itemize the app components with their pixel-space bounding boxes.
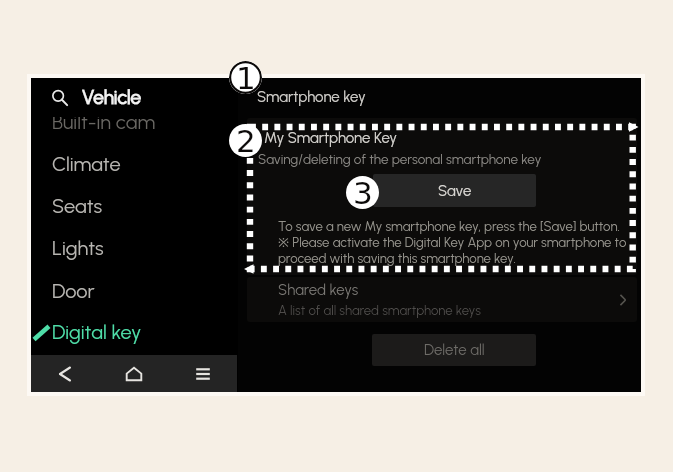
button[interactable]: Lights xyxy=(31,228,238,268)
staticText: To save a new My smartphone key, press t… xyxy=(278,218,627,266)
button[interactable] xyxy=(247,277,637,322)
button[interactable]: Save xyxy=(373,174,536,207)
staticText: Digital key xyxy=(52,320,142,344)
staticText: My Smartphone Key xyxy=(264,129,398,147)
staticText: Vehicle xyxy=(82,86,142,109)
button[interactable]: Seats xyxy=(31,186,238,226)
button[interactable]: Back xyxy=(31,355,99,392)
staticText: Delete all xyxy=(424,341,485,359)
button[interactable]: Built-in cam xyxy=(31,102,238,142)
staticText: Climate xyxy=(52,152,121,176)
staticText: 3 xyxy=(353,176,373,208)
button[interactable]: Vehicle xyxy=(51,82,142,112)
staticText: Seats xyxy=(52,194,103,218)
staticText: Smartphone key xyxy=(257,88,366,106)
button[interactable]: Climate xyxy=(31,144,238,184)
staticText: Save xyxy=(438,182,472,200)
button[interactable]: Door xyxy=(31,271,238,311)
button[interactable]: Delete all xyxy=(372,334,536,366)
button[interactable]: Menu xyxy=(168,355,237,392)
staticText: Door xyxy=(52,279,95,303)
staticText: 2 xyxy=(236,124,256,156)
staticText: 1 xyxy=(236,61,256,93)
button[interactable]: Home xyxy=(99,355,168,392)
staticText: A list of all shared smartphone keys xyxy=(278,302,481,318)
button[interactable]: Shared keys xyxy=(615,292,631,308)
staticText: Lights xyxy=(52,236,104,260)
staticText: Shared keys xyxy=(278,281,359,299)
staticText: Saving/deleting of the personal smartpho… xyxy=(258,151,542,167)
button[interactable]: Digital key xyxy=(31,312,238,352)
staticText: Built-in cam xyxy=(52,110,156,134)
